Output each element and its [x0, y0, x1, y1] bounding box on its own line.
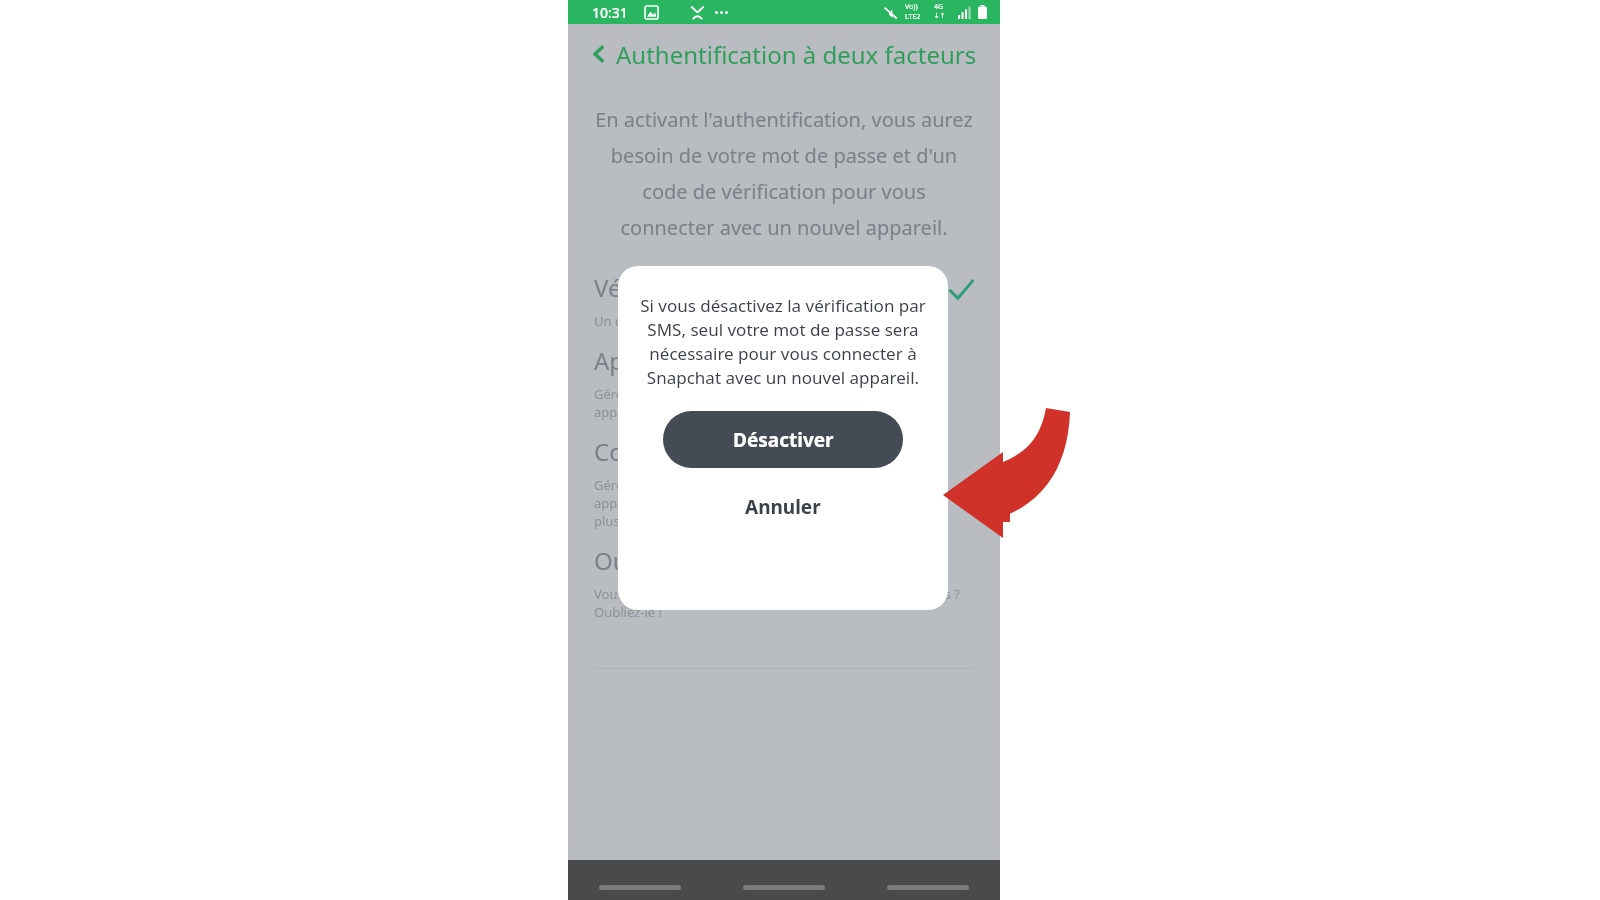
button[interactable]: Désactiver [663, 411, 903, 468]
button[interactable]: Retour [582, 37, 616, 71]
button[interactable]: Applications [568, 344, 1000, 435]
button[interactable]: Récents [568, 860, 712, 900]
staticText: 10:31 [592, 3, 628, 22]
button[interactable]: Annuler [634, 482, 932, 532]
staticText: Applications [594, 344, 732, 377]
staticText: Authentification à deux facteurs [616, 38, 977, 71]
staticText: Désactiver [733, 427, 834, 453]
staticText: 4G [934, 2, 944, 12]
button[interactable]: Vérification par SMS [568, 271, 1000, 344]
button[interactable]: Oublier un appareil [568, 544, 1000, 635]
staticText: Annuler [745, 494, 821, 520]
button[interactable]: Retour [568, 24, 1000, 84]
staticText: Gérez les codes pour les [594, 476, 742, 494]
button[interactable]: Accueil [712, 860, 856, 900]
staticText: Vérification par SMS [594, 271, 820, 304]
staticText: plus accéder. [594, 512, 673, 530]
staticText: appareils auxquels vous ne pouvez [594, 494, 807, 512]
staticText: Vous avez perdu l'accès à l'un de vos ap… [594, 585, 960, 603]
staticText: Si vous désactivez la vérification par S… [634, 294, 932, 389]
staticText: Codes de récupération [594, 435, 849, 468]
button[interactable]: Retour [856, 860, 1000, 900]
staticText: LTE2 [905, 12, 921, 22]
staticText: approuvées. [594, 403, 670, 421]
staticText: Vo)) [905, 2, 918, 12]
staticText: Gérez les applications [594, 385, 727, 403]
staticText: Oubliez-le ! [594, 603, 662, 621]
staticText: ↓↑ [934, 12, 946, 20]
staticText: Oublier un appareil [594, 544, 813, 577]
staticText: Un code vous sera envoyé par SMS. [594, 312, 810, 330]
button[interactable]: Codes de récupération [568, 435, 1000, 544]
staticText: En activant l'authentification, vous aur… [594, 106, 974, 241]
